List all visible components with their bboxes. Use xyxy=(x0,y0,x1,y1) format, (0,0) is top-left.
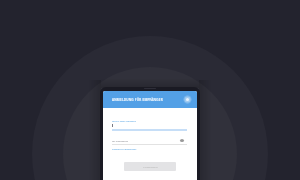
staticText: ANMELDEN xyxy=(143,165,158,168)
staticText: Passwort vergessen? xyxy=(112,147,136,150)
button[interactable]: ANMELDUNG FÜR EMPFÄNGER xyxy=(103,91,197,108)
button[interactable]: Passwort vergessen? xyxy=(112,147,136,150)
staticText: ANMELDUNG FÜR EMPFÄNGER xyxy=(112,98,163,102)
staticText: Ihre E-Mail-Adresse* xyxy=(112,119,136,122)
button[interactable]: Hilfe xyxy=(183,95,192,104)
button[interactable]: ANMELDEN xyxy=(124,162,176,171)
button[interactable]: Passwort anzeigen xyxy=(177,136,187,145)
staticText: Ihr Passwort* xyxy=(112,139,128,142)
